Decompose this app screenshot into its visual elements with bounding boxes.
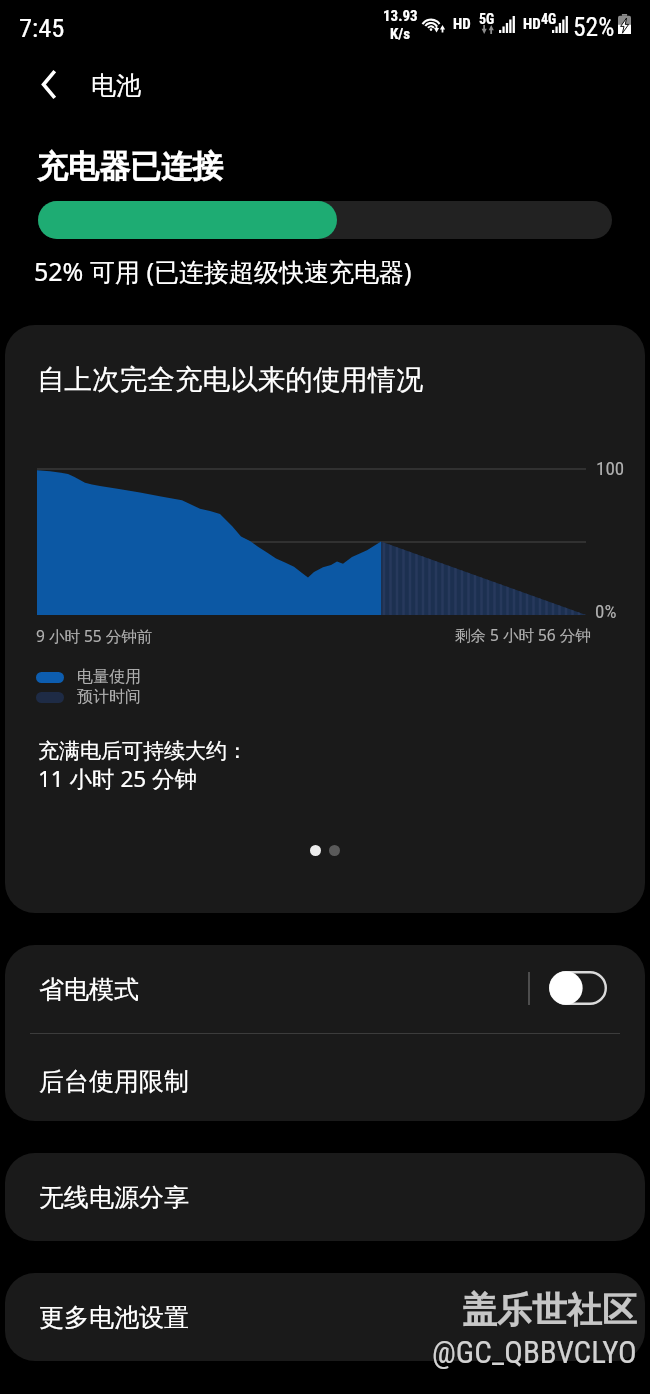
staticText: 充电器已连接 [37,147,223,186]
button[interactable]: 更多电池设置 [5,1273,645,1361]
staticText: 剩余 5 小时 56 分钟 [455,624,591,645]
button[interactable]: 返回 [25,60,73,108]
staticText: 11 小时 25 分钟 [38,763,198,794]
staticText: 5G [479,11,495,27]
staticText: 省电模式 [39,974,139,1005]
staticText: 充满电后可持续大约： [38,738,248,764]
staticText: 13.93 [383,7,418,25]
staticText: 4G [541,11,557,27]
staticText: 更多电池设置 [39,1302,189,1333]
staticText: HD [453,15,471,33]
staticText: 100 [596,457,625,479]
staticText: 9 小时 55 分钟前 [36,625,153,646]
staticText: 自上次完全充电以来的使用情况 [37,362,424,397]
button[interactable]: 无线电源分享 [5,1153,645,1241]
staticText: 后台使用限制 [39,1066,189,1097]
staticText: 52% [573,12,615,42]
staticText: @GC_QBBVCLYO [432,1334,637,1370]
staticText: HD [523,15,541,33]
staticText: 盖乐世社区 [462,1288,637,1332]
staticText: K/s [390,25,411,43]
staticText: 7:45 [19,12,65,43]
staticText: 0% [595,600,617,622]
button[interactable]: 省电模式 [5,945,645,1033]
staticText: 无线电源分享 [39,1182,189,1213]
staticText: 电池 [91,70,141,101]
button[interactable]: 后台使用限制 [5,1034,645,1121]
staticText: 52% 可用 (已连接超级快速充电器) [34,254,412,288]
button[interactable]: 省电模式开关 [549,971,607,1005]
staticText: 预计时间 [77,687,141,707]
staticText: 电量使用 [77,667,141,687]
